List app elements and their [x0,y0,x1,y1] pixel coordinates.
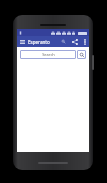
button[interactable]: More options [80,36,89,47]
staticText: Esperanto [28,39,50,45]
button[interactable]: Share [69,36,80,47]
button[interactable]: Search [20,50,76,59]
button[interactable]: Search [77,50,86,59]
button[interactable]: Open navigation drawer [17,36,28,47]
staticText: Search [42,52,55,57]
button[interactable]: Search [58,36,69,47]
